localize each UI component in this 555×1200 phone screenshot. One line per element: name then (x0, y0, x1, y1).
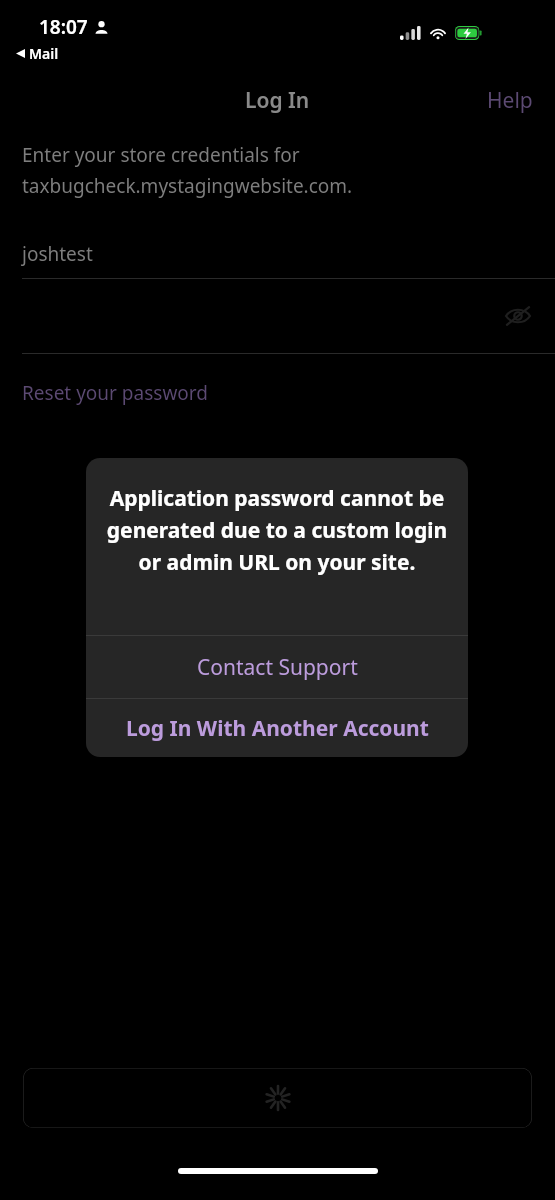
staticText: Log In (245, 86, 310, 115)
staticText: Application password cannot be generated… (106, 484, 448, 576)
staticText: joshtest (22, 241, 93, 267)
staticText: Log In With Another Account (126, 714, 429, 743)
staticText: Contact Support (197, 653, 358, 682)
button[interactable]: Show password (499, 301, 537, 331)
button[interactable]: Mail (14, 42, 61, 65)
button[interactable]: Contact Support (86, 636, 468, 698)
button[interactable]: Help (465, 80, 555, 120)
staticText: Mail (29, 44, 59, 63)
staticText: 18:07 (39, 14, 88, 40)
button[interactable]: joshtest (0, 230, 555, 278)
staticText: Enter your store credentials for taxbugc… (22, 142, 353, 198)
staticText: Help (487, 86, 533, 114)
staticText: Reset your password (22, 380, 208, 406)
button[interactable]: Reset your password (0, 378, 216, 408)
button[interactable]: Log In, loading (23, 1068, 532, 1128)
button[interactable]: Log In With Another Account (86, 699, 468, 757)
